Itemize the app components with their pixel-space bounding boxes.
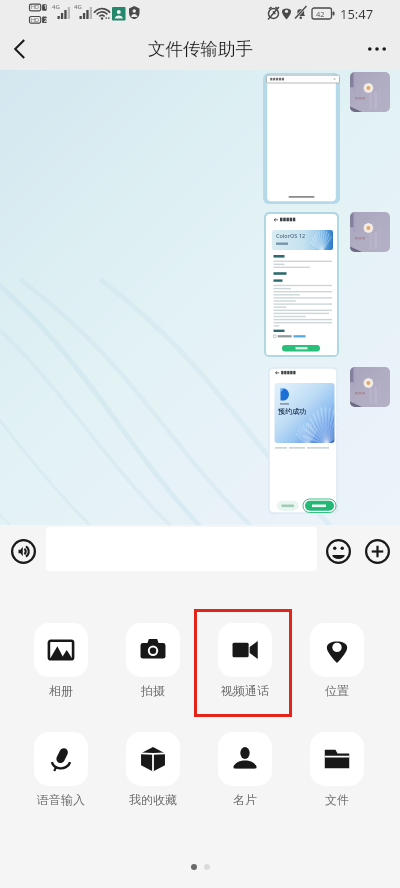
button[interactable]: 语音输入 <box>21 732 101 807</box>
staticText: HD <box>31 3 40 10</box>
button[interactable]: Voice input <box>2 530 44 572</box>
staticText: 语音输入 <box>37 792 85 807</box>
button[interactable]: Emoji <box>317 530 360 573</box>
button[interactable] <box>350 212 390 252</box>
button[interactable] <box>263 73 340 204</box>
staticText: 42 <box>316 9 325 19</box>
button[interactable]: 位置 <box>297 623 377 698</box>
button[interactable]: 视频通话 <box>205 623 285 698</box>
button[interactable]: 文件 <box>297 732 377 807</box>
button[interactable]: 名片 <box>205 732 285 807</box>
staticText: 15:47 <box>340 5 374 23</box>
staticText: 我的收藏 <box>129 792 177 807</box>
staticText: 视频通话 <box>221 683 269 698</box>
staticText: 1 <box>44 3 48 10</box>
button[interactable]: More options <box>354 28 400 70</box>
button[interactable]: More actions <box>356 530 399 573</box>
button[interactable]: 拍摄 <box>113 623 193 698</box>
staticText: 4G <box>74 3 82 11</box>
button[interactable] <box>350 367 390 407</box>
button[interactable]: 我的收藏 <box>113 732 193 807</box>
staticText: 名片 <box>233 792 257 807</box>
staticText: 位置 <box>325 683 349 698</box>
button[interactable]: ColorOS 12 <box>264 212 339 357</box>
staticText: 4G <box>52 3 60 11</box>
staticText: ColorOS 12 <box>276 232 306 239</box>
staticText: HD <box>31 16 40 23</box>
staticText: 文件传输助手 <box>148 38 253 60</box>
staticText: 2 <box>44 16 48 23</box>
staticText: 文件 <box>325 792 349 807</box>
staticText: 拍摄 <box>141 683 165 698</box>
button[interactable] <box>350 72 390 112</box>
button[interactable]: 预约成功 <box>268 367 338 514</box>
button[interactable]: Back <box>0 28 40 70</box>
staticText: 相册 <box>49 683 73 698</box>
staticText: 预约成功 <box>278 407 306 416</box>
button[interactable]: 相册 <box>21 623 101 698</box>
